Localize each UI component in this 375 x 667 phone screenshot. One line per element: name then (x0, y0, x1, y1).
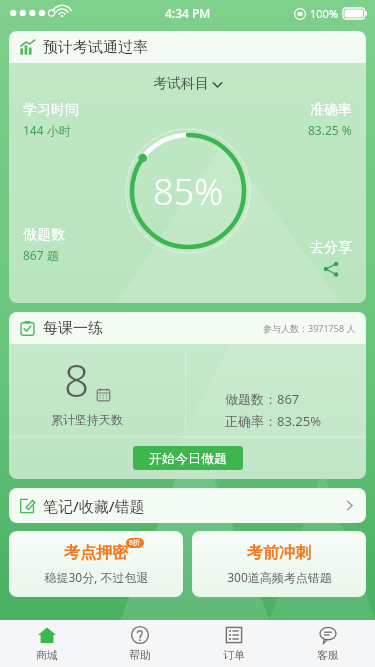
staticText: 做题数 (23, 226, 65, 244)
staticText: 300道高频考点错题 (227, 569, 332, 585)
staticText: 预计考试通过率 (43, 38, 148, 57)
button[interactable]: 考试科目 (149, 71, 227, 97)
staticText: 商城 (36, 648, 58, 662)
staticText: 考点押密 (64, 543, 128, 563)
staticText: 开始今日做题 (149, 450, 227, 466)
staticText: 笔记/收藏/错题 (43, 496, 145, 516)
staticText: 100% (310, 6, 339, 21)
button[interactable]: 订单 (187, 620, 281, 667)
staticText: 客服 (317, 648, 339, 662)
staticText: 85% (153, 167, 224, 216)
button[interactable]: 开始今日做题 (133, 446, 243, 470)
staticText: 稳提30分, 不过包退 (44, 569, 149, 585)
button[interactable]: 去分享 (310, 239, 352, 277)
staticText: 4:34 PM (165, 5, 211, 21)
staticText: 83.25 % (308, 122, 352, 138)
button[interactable]: 笔记/收藏/错题 (9, 488, 366, 523)
staticText: 帮助 (129, 648, 151, 662)
staticText: 867 题 (23, 247, 59, 263)
staticText: 8折 (129, 538, 141, 548)
staticText: 考试科目 (153, 75, 209, 93)
button[interactable]: 客服 (281, 620, 375, 667)
button[interactable]: 商城 (0, 620, 93, 667)
staticText: 订单 (223, 648, 245, 662)
staticText: 做题数：867 (225, 390, 300, 408)
staticText: 参与人数：3971758 人 (263, 322, 356, 334)
button[interactable]: 考前冲刺 (192, 531, 366, 597)
staticText: 8 (64, 350, 90, 410)
staticText: 准确率 (310, 101, 352, 119)
staticText: 考前冲刺 (247, 543, 311, 563)
staticText: 每课一练 (43, 319, 103, 338)
staticText: 去分享 (310, 239, 352, 257)
staticText: 学习时间 (23, 101, 79, 119)
staticText: 144 小时 (23, 122, 71, 138)
staticText: 正确率：83.25% (225, 412, 322, 430)
staticText: 累计坚持天数 (51, 412, 123, 427)
button[interactable]: 帮助 (93, 620, 187, 667)
button[interactable]: 考点押密 (9, 531, 183, 597)
